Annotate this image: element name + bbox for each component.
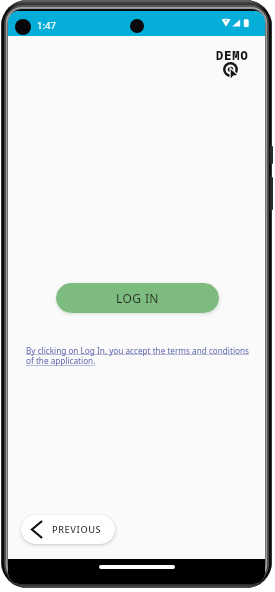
button[interactable]: By clicking on Log In, you accept the te… — [26, 345, 252, 367]
staticText: By clicking on Log In, you accept the te… — [26, 345, 252, 367]
staticText: 1:47 — [37, 19, 56, 32]
staticText: LOG IN — [116, 290, 159, 306]
staticText: DEMO — [216, 47, 249, 63]
button[interactable]: PREVIOUS — [21, 515, 115, 544]
staticText: PREVIOUS — [52, 523, 102, 536]
button[interactable]: LOG IN — [56, 283, 219, 313]
